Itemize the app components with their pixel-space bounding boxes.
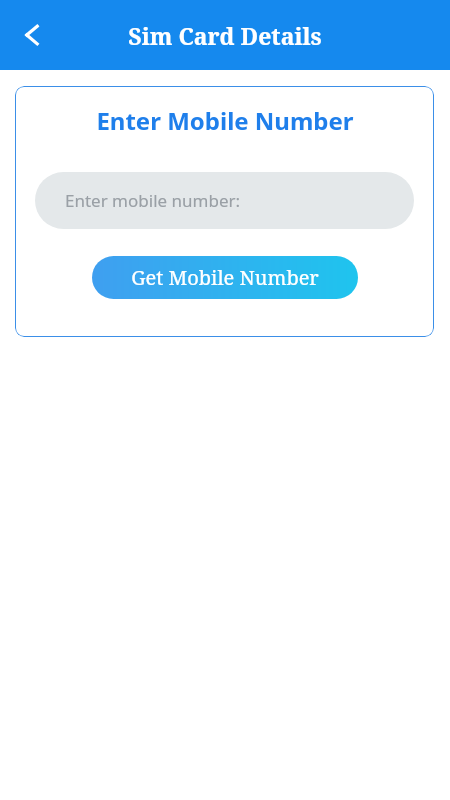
staticText: Enter mobile number: [65, 189, 241, 212]
staticText: Sim Card Details [128, 20, 322, 51]
button[interactable]: Enter mobile number: [35, 172, 414, 229]
button[interactable]: Get Mobile Number [92, 256, 358, 299]
staticText: Get Mobile Number [131, 264, 319, 291]
staticText: Enter Mobile Number [96, 104, 354, 137]
button[interactable]: Back [8, 11, 56, 59]
